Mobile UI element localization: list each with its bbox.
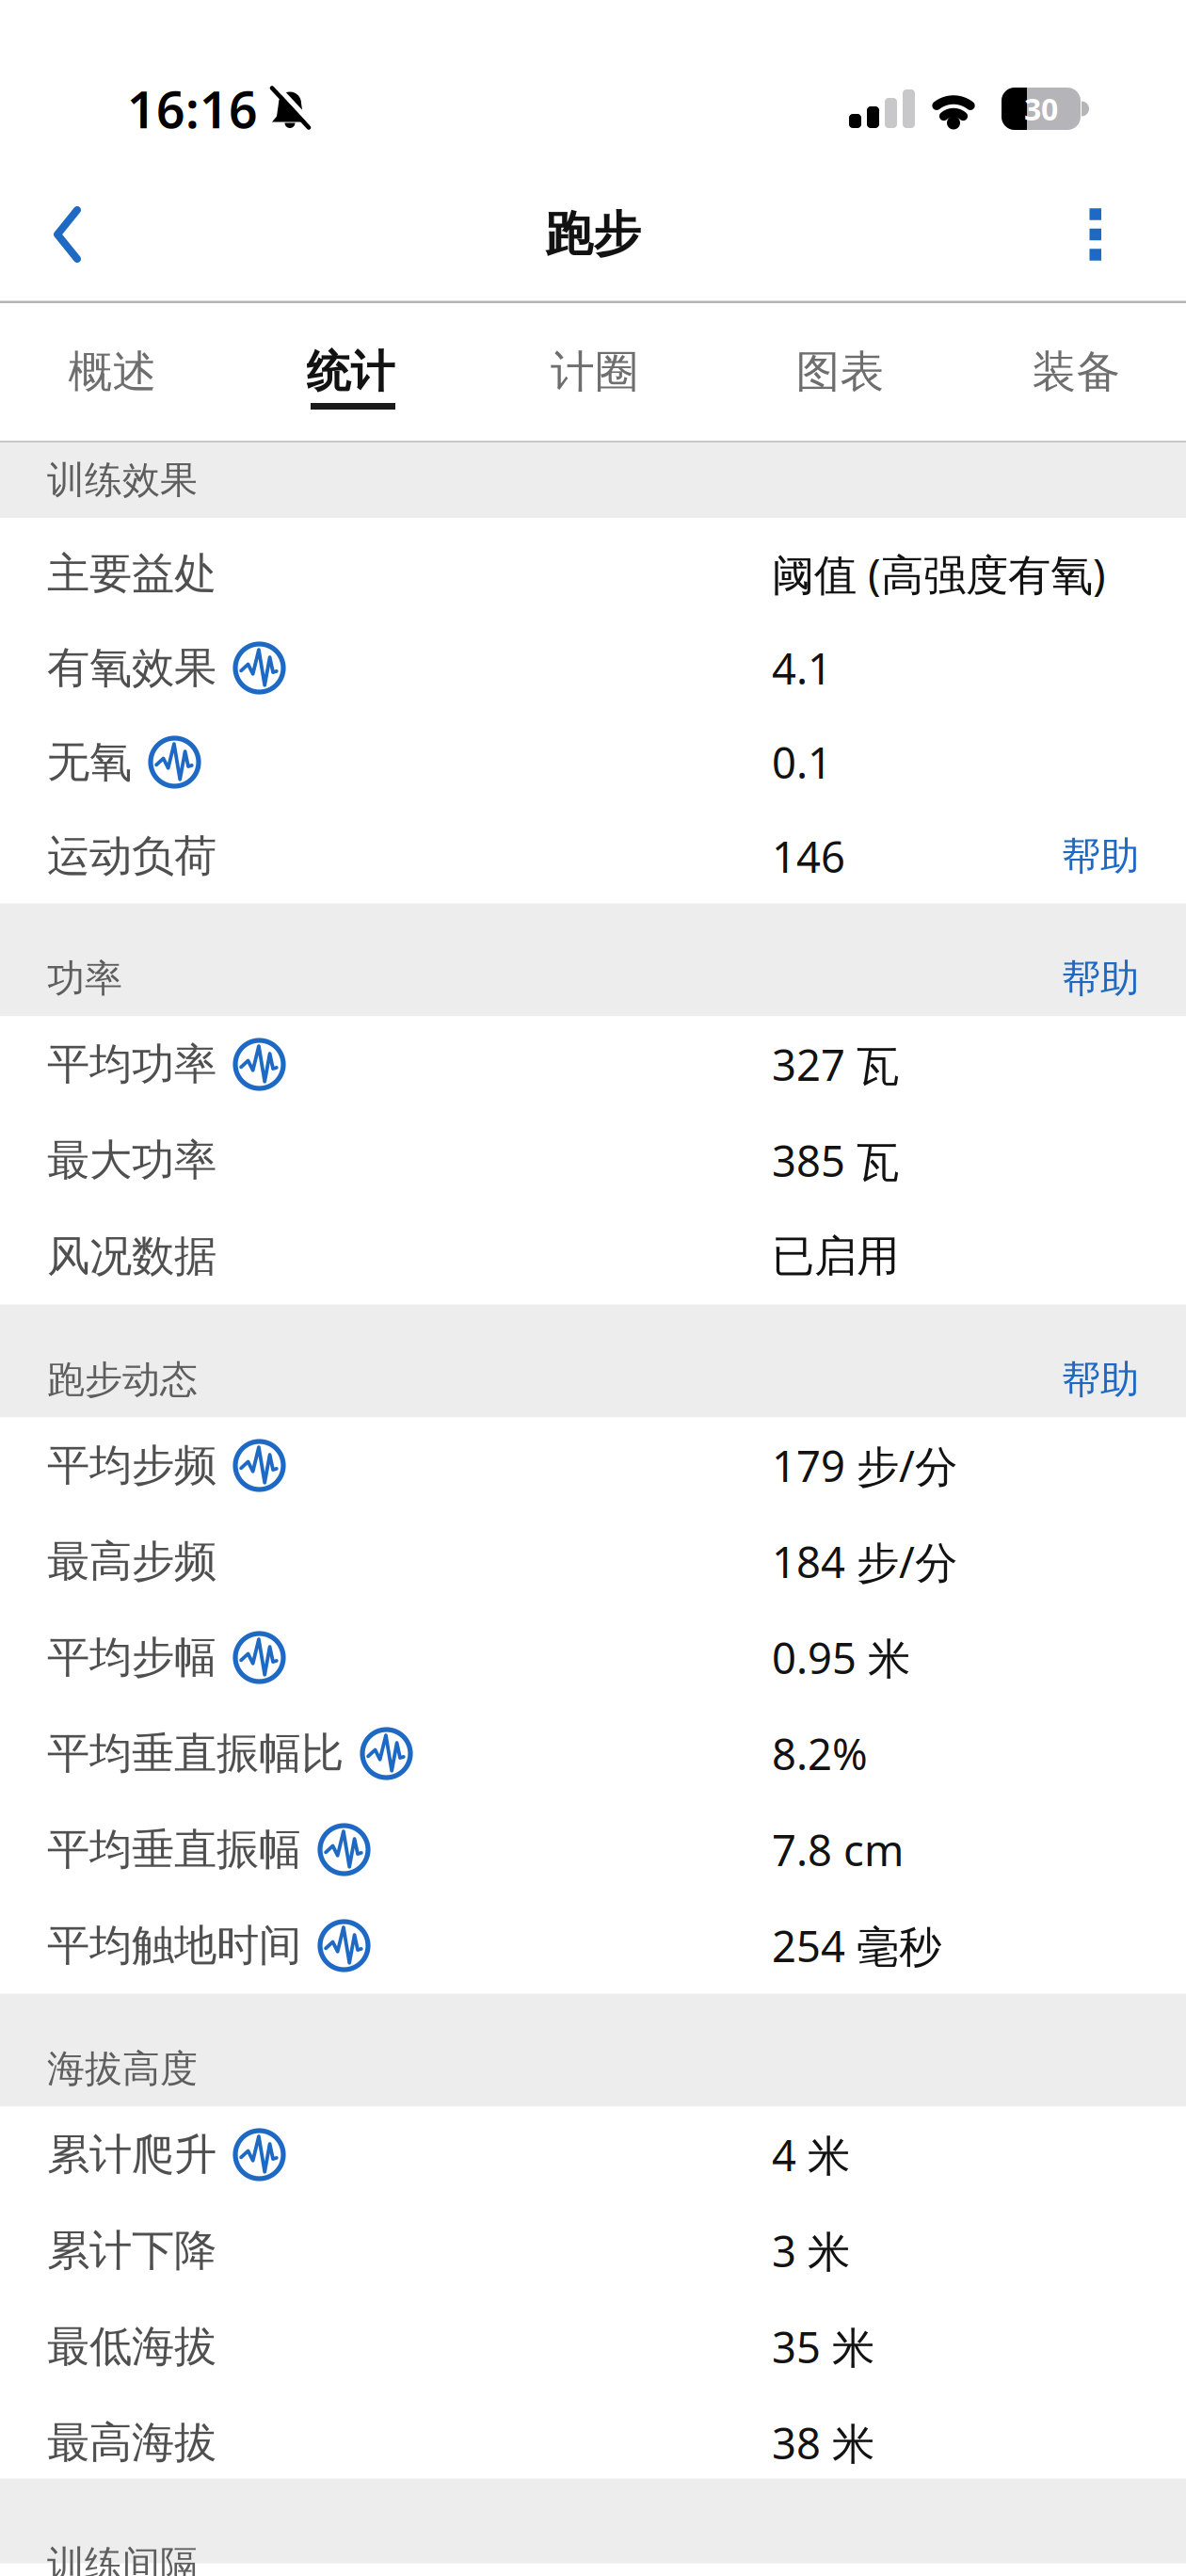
button[interactable]: 帮助 (1062, 1356, 1139, 1404)
staticText: 平均步幅 (47, 1631, 216, 1684)
staticText: 184 步/分 (772, 1533, 957, 1590)
staticText: 327 瓦 (772, 1036, 899, 1093)
staticText: 平均步频 (47, 1439, 216, 1492)
button[interactable]: 概述 (0, 303, 225, 441)
button[interactable]: 帮助 (1062, 955, 1139, 1003)
staticText: 0.95 米 (772, 1629, 910, 1686)
staticText: 平均垂直振幅 (47, 1823, 301, 1876)
button[interactable]: 帮助 (1062, 832, 1139, 880)
staticText: 4.1 (772, 640, 832, 696)
button[interactable]: 返回 (0, 206, 82, 263)
staticText: 图表 (796, 345, 884, 399)
staticText: 有氧效果 (47, 642, 216, 694)
staticText: 海拔高度 (47, 2046, 198, 2092)
staticText: 风况数据 (47, 1230, 216, 1283)
staticText: 254 毫秒 (772, 1917, 941, 1974)
staticText: 平均功率 (47, 1038, 216, 1091)
staticText: 最低海拔 (47, 2321, 216, 2373)
staticText: 阈值 (高强度有氧) (772, 546, 1106, 602)
staticText: 179 步/分 (772, 1437, 957, 1494)
staticText: 统计 (306, 345, 395, 399)
staticText: 帮助 (1062, 1356, 1139, 1404)
staticText: 主要益处 (47, 548, 216, 600)
staticText: 跑步 (545, 205, 641, 264)
staticText: 0.1 (772, 734, 832, 791)
button[interactable]: 查看平均功率图表 (232, 1038, 286, 1091)
button[interactable]: 查看累计爬升图表 (232, 2128, 286, 2182)
staticText: 已启用 (772, 1230, 899, 1283)
staticText: 最大功率 (47, 1134, 216, 1187)
staticText: 装备 (1032, 345, 1121, 399)
staticText: 30 (1024, 89, 1058, 129)
staticText: 运动负荷 (47, 830, 216, 883)
button[interactable]: 查看平均步频图表 (232, 1439, 286, 1492)
button[interactable]: 计圈 (476, 303, 713, 441)
staticText: 累计下降 (47, 2225, 216, 2277)
staticText: 累计爬升 (47, 2128, 216, 2181)
button[interactable]: 查看平均垂直振幅比图表 (360, 1727, 413, 1780)
button[interactable]: 查看无氧图表 (148, 735, 201, 789)
staticText: 帮助 (1062, 955, 1139, 1003)
staticText: 无氧 (47, 736, 132, 788)
staticText: 16:16 (127, 75, 258, 142)
staticText: 4 米 (772, 2126, 850, 2183)
staticText: 平均触地时间 (47, 1919, 301, 1972)
staticText: 38 米 (772, 2414, 874, 2471)
staticText: 8.2% (772, 1725, 868, 1782)
staticText: 35 米 (772, 2318, 874, 2375)
staticText: 计圈 (551, 345, 639, 399)
button[interactable]: 装备 (967, 303, 1186, 441)
staticText: 385 瓦 (772, 1132, 899, 1189)
staticText: 概述 (68, 345, 157, 399)
staticText: 训练效果 (47, 457, 198, 503)
button[interactable]: 查看平均触地时间图表 (317, 1919, 371, 1972)
staticText: 功率 (47, 956, 122, 1002)
button[interactable]: 查看平均步幅图表 (232, 1631, 286, 1684)
staticText: 3 米 (772, 2222, 850, 2279)
staticText: 146 (772, 828, 845, 885)
button[interactable]: 查看有氧效果图表 (232, 641, 286, 695)
button[interactable]: 查看平均垂直振幅图表 (317, 1823, 371, 1876)
staticText: 跑步动态 (47, 1357, 198, 1403)
staticText: 最高海拔 (47, 2417, 216, 2469)
staticText: 7.8 cm (772, 1821, 904, 1878)
staticText: 帮助 (1062, 832, 1139, 880)
button[interactable]: 统计 (225, 303, 476, 441)
button[interactable]: 更多选项 (1090, 208, 1186, 261)
staticText: 平均垂直振幅比 (47, 1727, 344, 1780)
staticText: 最高步频 (47, 1535, 216, 1588)
button[interactable]: 图表 (713, 303, 967, 441)
staticText: 训练间隔 (47, 2542, 198, 2576)
